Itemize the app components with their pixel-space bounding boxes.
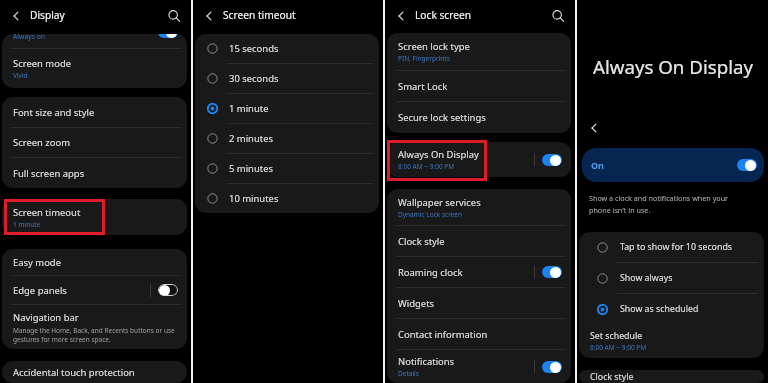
button[interactable]: Smart Lock (387, 71, 571, 101)
button[interactable]: Back (7, 7, 25, 25)
button[interactable]: Not selected (195, 124, 379, 153)
staticText: Notifications (398, 355, 455, 368)
button[interactable]: Navigation bar (2, 305, 187, 349)
button[interactable]: Secure lock settings (387, 102, 571, 133)
other: Selected (207, 103, 218, 114)
staticText: 5 minutes (229, 162, 274, 175)
staticText: Edge panels (13, 284, 67, 297)
staticText: Set schedule (590, 330, 643, 342)
staticText: Full screen apps (13, 167, 85, 180)
button[interactable]: Always On Display (387, 142, 571, 177)
staticText: Accidental touch protection (13, 366, 135, 379)
staticText: Screen timeout (13, 206, 81, 219)
staticText: Manage the Home, Back, and Recents butto… (13, 326, 175, 344)
button[interactable]: Turn off (542, 361, 562, 373)
button[interactable]: Notifications (387, 350, 571, 383)
staticText: Easy mode (13, 256, 61, 269)
staticText: Screen mode (13, 57, 72, 70)
button[interactable]: Set schedule (579, 324, 764, 358)
staticText: Dynamic Lock screen (398, 210, 463, 219)
button[interactable]: Full screen apps (2, 158, 187, 188)
staticText: Show a clock and notifications when your… (589, 193, 729, 215)
button[interactable]: Screen zoom (2, 128, 187, 157)
button[interactable]: Font size and style (2, 97, 187, 127)
staticText: Screen lock type (398, 40, 470, 53)
button[interactable]: Wallpaper services (387, 189, 571, 225)
button[interactable]: Turn off (542, 266, 562, 278)
staticText: Show as scheduled (620, 303, 699, 315)
button[interactable]: Screen timeout (2, 199, 187, 235)
button[interactable]: Contact information (387, 319, 571, 349)
staticText: Roaming clock (398, 266, 463, 279)
staticText: Always On Display (593, 54, 754, 79)
button[interactable]: Turn off (542, 154, 562, 166)
button[interactable]: Not selected (579, 263, 764, 293)
staticText: 1 minute (229, 102, 269, 115)
button[interactable]: Selected (579, 294, 764, 324)
staticText: Tap to show for 10 seconds (620, 241, 733, 253)
other: Not selected (207, 73, 218, 84)
button[interactable]: Screen lock type (387, 33, 571, 70)
staticText: Always on (13, 34, 46, 41)
staticText: 1 minute (13, 220, 41, 229)
staticText: PIN, Fingerprints (398, 54, 450, 63)
staticText: Clock style (590, 371, 634, 383)
button[interactable]: Search (165, 7, 183, 25)
other: Not selected (207, 193, 218, 204)
button[interactable]: Roaming clock (387, 257, 571, 287)
button[interactable]: Search (549, 7, 567, 25)
staticText: Details (398, 369, 419, 378)
other: Not selected (207, 133, 218, 144)
other: Selected (597, 304, 608, 315)
staticText: Display (30, 8, 65, 22)
staticText: Screen zoom (13, 136, 71, 149)
button[interactable]: Accidental touch protection (2, 361, 187, 383)
button[interactable]: Turn off (737, 159, 757, 171)
staticText: Secure lock settings (398, 111, 486, 124)
button[interactable]: Screen mode (2, 49, 187, 88)
staticText: Widgets (398, 297, 435, 310)
staticText: Always On Display (398, 148, 479, 161)
button[interactable]: Turn off (158, 34, 178, 38)
staticText: Show always (620, 272, 673, 284)
button[interactable]: Always on (2, 34, 187, 48)
button[interactable]: Back (588, 122, 600, 134)
button[interactable]: Easy mode (2, 249, 187, 275)
staticText: 2 minutes (229, 132, 274, 145)
staticText: Wallpaper services (398, 196, 481, 209)
staticText: Smart Lock (398, 80, 448, 93)
button[interactable]: Not selected (195, 64, 379, 93)
button[interactable]: Selected (195, 94, 379, 123)
staticText: Vivid (13, 71, 28, 80)
other: Not selected (207, 163, 218, 174)
staticText: 30 seconds (229, 72, 279, 85)
staticText: 8:00 AM ~ 9:00 PM (398, 162, 455, 171)
button[interactable]: Back (392, 7, 410, 25)
staticText: Navigation bar (13, 311, 79, 324)
button[interactable]: Not selected (579, 232, 764, 262)
staticText: Contact information (398, 328, 488, 341)
button[interactable]: Not selected (195, 154, 379, 183)
button[interactable]: Clock style (387, 226, 571, 256)
button[interactable]: Not selected (195, 184, 379, 213)
staticText: 10 minutes (229, 192, 279, 205)
button[interactable]: Edge panels (2, 276, 187, 304)
button[interactable]: Clock style (579, 370, 764, 383)
staticText: Screen timeout (223, 8, 296, 22)
staticText: Lock screen (415, 8, 472, 22)
staticText: Clock style (398, 235, 445, 248)
other: Not selected (597, 273, 608, 284)
button[interactable]: Turn on (158, 284, 178, 296)
button[interactable]: Back (200, 7, 218, 25)
button[interactable]: On (582, 148, 764, 182)
button[interactable]: Not selected (195, 34, 379, 63)
other: Not selected (597, 242, 608, 253)
staticText: Font size and style (13, 106, 95, 119)
staticText: 8:00 AM ~ 9:00 PM (590, 343, 647, 352)
other: Not selected (207, 43, 218, 54)
button[interactable]: Widgets (387, 288, 571, 318)
staticText: 15 seconds (229, 42, 279, 55)
staticText: On (591, 159, 604, 171)
